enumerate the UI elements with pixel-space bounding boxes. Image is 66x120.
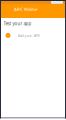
button[interactable]: Add your APK: [0, 27, 66, 38]
button[interactable]: Window tab: [51, 1, 66, 4]
button[interactable]: ARC Welder: [0, 4, 38, 12]
staticText: Add your APK: [17, 33, 39, 38]
staticText: Test your app: [3, 21, 31, 27]
staticText: ARC Welder: [14, 6, 38, 12]
